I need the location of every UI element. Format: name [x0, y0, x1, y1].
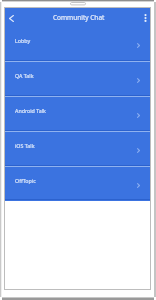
- button[interactable]: Android Talk: [5, 97, 150, 132]
- button[interactable]: iOS Talk: [5, 132, 150, 167]
- button[interactable]: OffTopic: [5, 167, 150, 201]
- staticText: Android Talk: [15, 107, 46, 114]
- staticText: OffTopic: [15, 177, 36, 184]
- staticText: iOS Talk: [15, 142, 35, 149]
- staticText: Community Chat: [53, 13, 105, 22]
- button[interactable]: Back: [5, 10, 21, 26]
- staticText: Lobby: [15, 37, 31, 44]
- button[interactable]: Lobby: [5, 27, 150, 62]
- staticText: QA Talk: [15, 72, 34, 79]
- button[interactable]: QA Talk: [5, 62, 150, 97]
- button[interactable]: More options: [134, 10, 150, 26]
